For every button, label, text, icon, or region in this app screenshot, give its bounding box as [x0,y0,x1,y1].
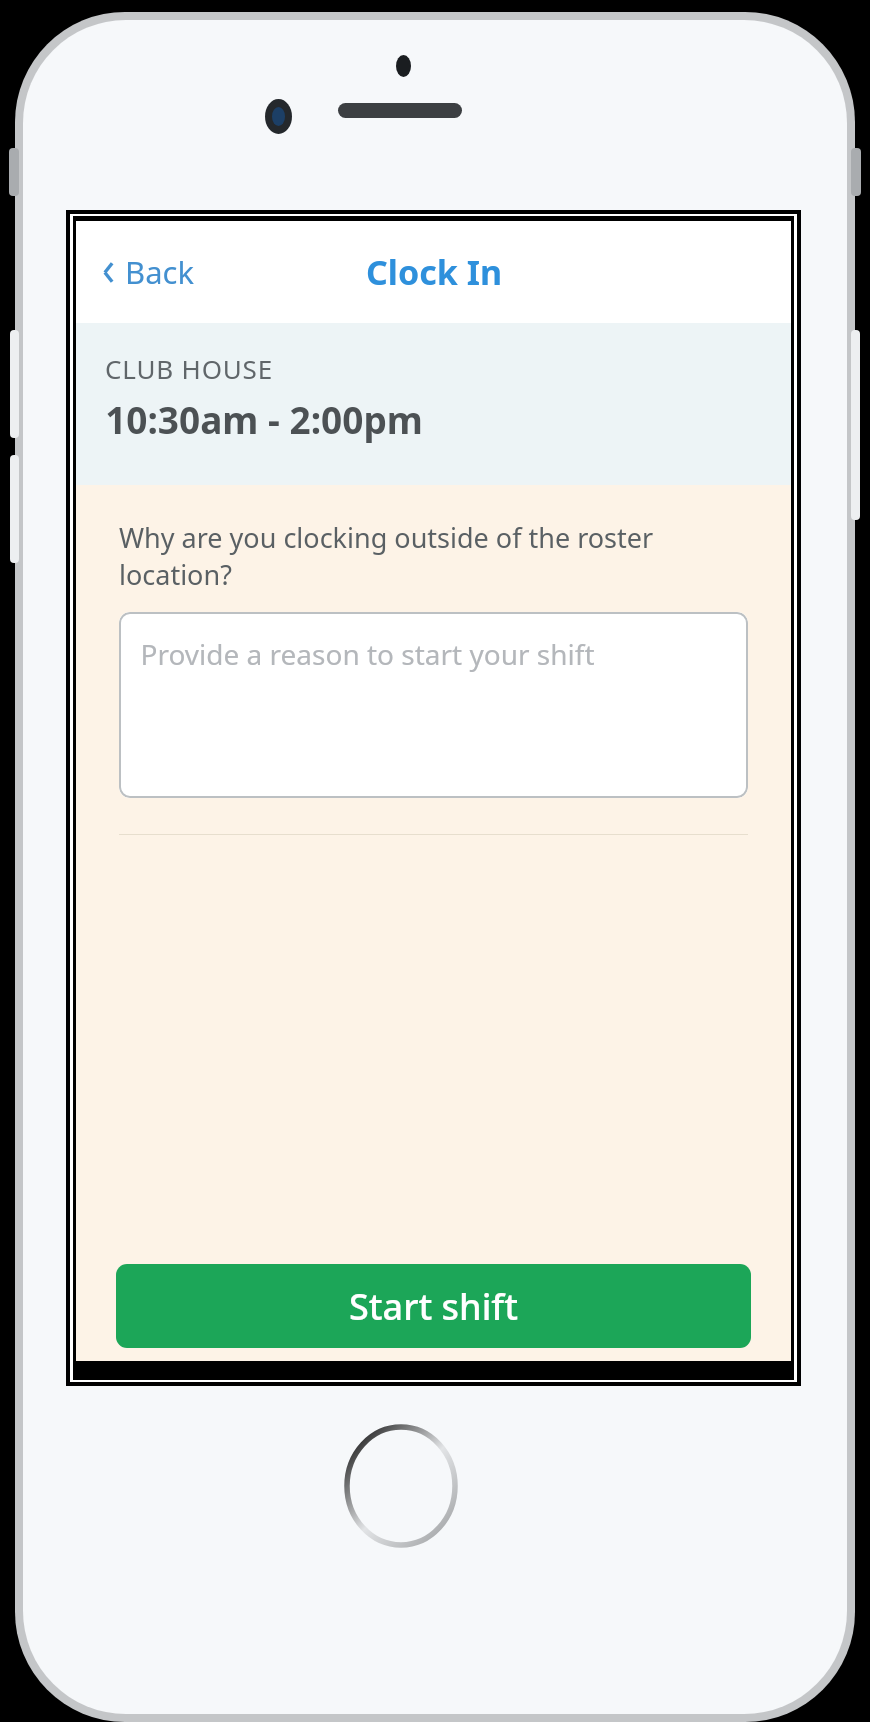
staticText: Clock In [366,249,502,295]
button[interactable]: Start shift [116,1264,751,1348]
staticText: 10:30am - 2:00pm [105,394,423,444]
button[interactable]: Provide a reason to start your shift [119,612,748,798]
staticText: Start shift [349,1282,518,1331]
staticText: Back [125,251,194,293]
staticText: Why are you clocking outside of the rost… [119,519,748,593]
staticText: CLUB HOUSE [105,351,273,386]
button[interactable]: Back [90,239,206,305]
staticText: Provide a reason to start your shift [140,635,595,673]
other: Back [102,261,115,284]
